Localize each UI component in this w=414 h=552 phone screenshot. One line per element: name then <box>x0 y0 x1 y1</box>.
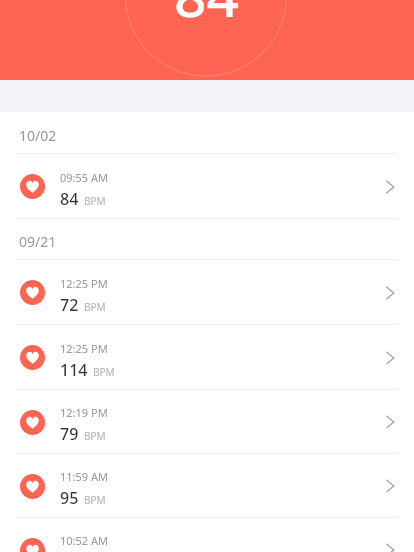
button[interactable]: 12:25 PM <box>0 260 414 325</box>
staticText: BPM <box>84 429 106 443</box>
other: Open details <box>382 478 398 494</box>
staticText: 84 <box>174 0 240 34</box>
button[interactable]: 09:55 AM <box>0 154 414 219</box>
other: Open details <box>382 350 398 366</box>
button[interactable]: 12:19 PM <box>0 390 414 454</box>
staticText: 09:55 AM <box>60 170 108 185</box>
staticText: 95 <box>60 487 79 509</box>
staticText: 10/02 <box>19 126 57 145</box>
staticText: BPM <box>93 365 115 379</box>
staticText: 114 <box>60 359 88 381</box>
other: Open details <box>382 542 398 552</box>
staticText: 12:19 PM <box>60 405 108 420</box>
staticText: 11:59 AM <box>60 469 108 484</box>
staticText: 79 <box>60 423 79 445</box>
staticText: 84 <box>60 188 79 210</box>
button[interactable]: Current heart rate 84 BPM <box>0 0 414 80</box>
other: Open details <box>382 285 398 301</box>
staticText: 12:25 PM <box>60 341 108 356</box>
button[interactable]: 10:52 AM <box>0 518 414 552</box>
other: Open details <box>382 414 398 430</box>
staticText: 12:25 PM <box>60 276 108 291</box>
staticText: 09/21 <box>19 232 57 251</box>
button[interactable]: 11:59 AM <box>0 454 414 518</box>
staticText: BPM <box>84 194 106 208</box>
button[interactable]: 12:25 PM <box>0 325 414 390</box>
staticText: 72 <box>60 294 79 316</box>
staticText: BPM <box>84 300 106 314</box>
staticText: BPM <box>84 493 106 507</box>
staticText: 10:52 AM <box>60 533 108 548</box>
other: Open details <box>382 179 398 195</box>
